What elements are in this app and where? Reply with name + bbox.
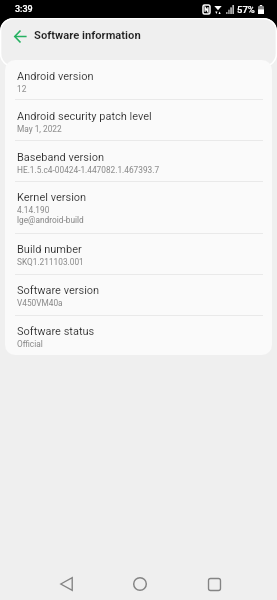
staticText: HE.1.5.c4-00424-1.447082.1.467393.7 xyxy=(17,165,160,175)
button[interactable]: Back xyxy=(51,569,81,599)
button[interactable]: Recents xyxy=(199,569,229,599)
button[interactable]: Kernel version xyxy=(5,182,272,234)
button[interactable]: Software version xyxy=(5,275,272,316)
staticText: Software information xyxy=(34,29,141,42)
staticText: May 1, 2022 xyxy=(17,124,62,134)
staticText: Software status xyxy=(17,325,95,338)
button[interactable]: Android version xyxy=(5,60,272,100)
button[interactable]: Home xyxy=(125,569,155,599)
staticText: Kernel version xyxy=(17,191,87,204)
button[interactable]: Back xyxy=(7,23,34,50)
staticText: V450VM40a xyxy=(17,298,63,308)
staticText: Android version xyxy=(17,70,94,83)
staticText: Android security patch level xyxy=(17,110,152,123)
staticText: Software version xyxy=(17,284,100,297)
staticText: 57% xyxy=(237,4,255,15)
staticText: SKQ1.211103.001 xyxy=(17,257,84,267)
staticText: 12 xyxy=(17,84,27,94)
button[interactable]: Build number xyxy=(5,234,272,275)
staticText: Build number xyxy=(17,243,82,256)
button[interactable]: Android security patch level xyxy=(5,100,272,141)
button[interactable]: Software status xyxy=(5,316,272,355)
staticText: 4.14.190 xyxy=(17,205,50,215)
button[interactable]: Baseband version xyxy=(5,141,272,182)
staticText: Official xyxy=(17,339,43,349)
staticText: Baseband version xyxy=(17,151,105,164)
staticText: 3:39 xyxy=(15,4,33,15)
staticText: lge@android-build xyxy=(17,215,84,225)
